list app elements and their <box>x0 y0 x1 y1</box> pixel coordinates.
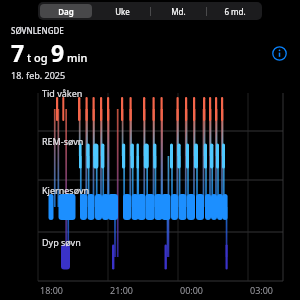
staticText: min <box>67 50 88 65</box>
staticText: Md. <box>171 6 186 17</box>
staticText: Dag <box>58 6 74 17</box>
staticText: 21:00 <box>110 284 134 296</box>
staticText: t og <box>27 50 48 65</box>
staticText: Tid våken <box>42 87 83 99</box>
staticText: 6 md. <box>224 6 246 17</box>
staticText: 03:00 <box>250 284 274 296</box>
staticText: Kjernesøvn <box>42 184 90 196</box>
staticText: 18:00 <box>40 284 64 296</box>
staticText: 9 <box>51 37 65 68</box>
button[interactable]: Md. <box>153 4 204 18</box>
button[interactable]: Dag <box>40 4 92 18</box>
button[interactable]: 6 md. <box>209 4 260 18</box>
staticText: Dyp søvn <box>42 236 81 248</box>
staticText: REM-søvn <box>42 135 84 147</box>
button[interactable]: Info <box>268 42 290 64</box>
staticText: 7 <box>11 37 25 68</box>
staticText: 18. feb. 2025 <box>11 69 66 81</box>
staticText: 00:00 <box>180 284 204 296</box>
button[interactable]: Uke <box>97 4 148 18</box>
staticText: Uke <box>115 6 130 17</box>
staticText: SØVNLENGDE <box>11 25 64 36</box>
